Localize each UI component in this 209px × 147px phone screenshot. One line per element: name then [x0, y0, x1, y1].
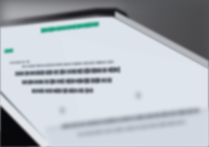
button[interactable]	[0, 0, 209, 147]
